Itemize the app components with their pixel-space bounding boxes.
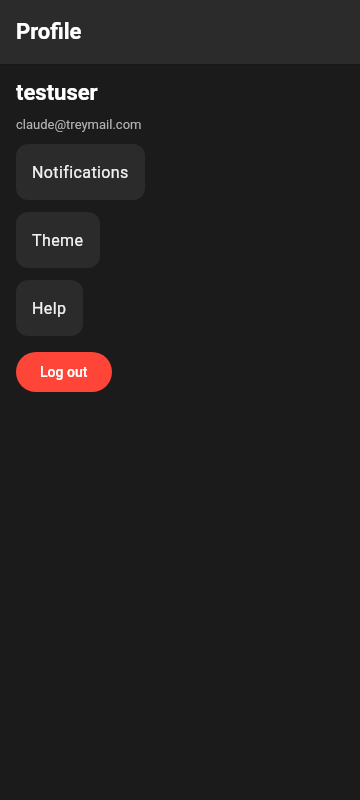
button[interactable]: Log out: [16, 352, 112, 392]
staticText: Help: [32, 299, 67, 318]
staticText: Profile: [16, 19, 82, 45]
staticText: Log out: [40, 364, 88, 380]
button[interactable]: Theme: [16, 212, 100, 268]
staticText: Theme: [32, 231, 84, 250]
staticText: claude@treymail.com: [16, 117, 142, 132]
button[interactable]: Notifications: [16, 144, 145, 200]
button[interactable]: Help: [16, 280, 83, 336]
staticText: Notifications: [32, 163, 129, 182]
staticText: testuser: [16, 80, 98, 106]
